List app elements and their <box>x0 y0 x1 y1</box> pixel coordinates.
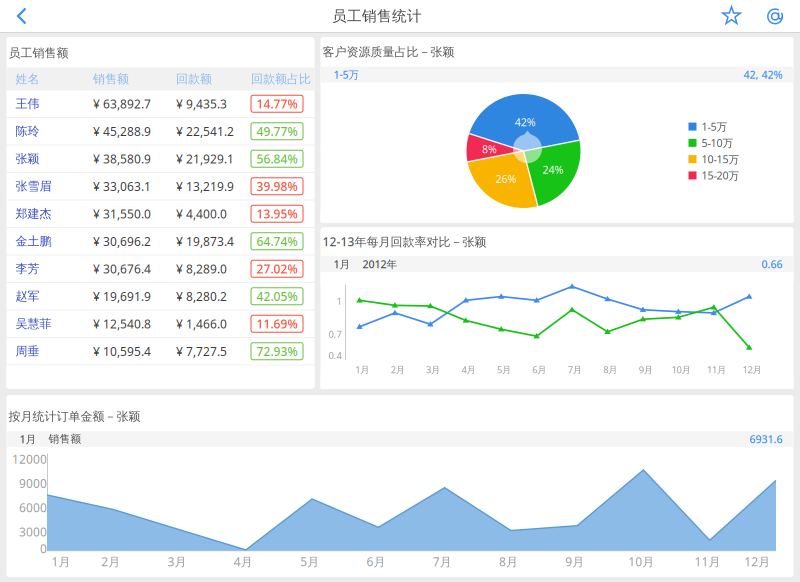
staticText: 0.4 <box>328 349 341 362</box>
staticText: 6月 <box>532 363 546 376</box>
staticText: 1-5万 <box>701 119 727 134</box>
staticText: 0 <box>40 540 47 556</box>
staticText: ¥ 38,580.9 <box>93 151 151 167</box>
staticText: 8月 <box>603 363 617 376</box>
staticText: 王伟 <box>15 96 39 111</box>
staticText: 42% <box>515 115 536 129</box>
staticText: 4月 <box>234 553 253 569</box>
staticText: 15-20万 <box>701 168 739 183</box>
staticText: 5月 <box>300 553 319 569</box>
button[interactable]: 张颖 <box>6 145 314 173</box>
button[interactable]: Favorite <box>710 0 754 32</box>
staticText: ¥ 31,550.0 <box>93 206 151 222</box>
staticText: 赵军 <box>15 289 39 304</box>
staticText: 2月 <box>391 363 405 376</box>
staticText: ¥ 10,595.4 <box>93 343 151 359</box>
staticText: 6月 <box>366 553 385 569</box>
staticText: 3000 <box>19 524 47 540</box>
staticText: 2012年 <box>362 257 397 271</box>
staticText: ¥ 12,540.8 <box>93 316 151 332</box>
staticText: ¥ 63,892.7 <box>93 96 151 112</box>
staticText: 5月 <box>497 363 511 376</box>
button[interactable]: 郑建杰 <box>6 200 314 228</box>
staticText: 2月 <box>101 553 120 569</box>
staticText: 吴慧菲 <box>15 316 51 331</box>
staticText: 1月 <box>355 363 369 376</box>
staticText: 42.05% <box>256 288 297 304</box>
button[interactable]: 王伟 <box>6 90 314 118</box>
staticText: 7月 <box>433 553 452 569</box>
staticText: 42, 42% <box>743 67 782 82</box>
staticText: 8% <box>482 142 497 156</box>
staticText: 56.84% <box>256 151 297 167</box>
button[interactable]: 李芳 <box>6 255 314 283</box>
staticText: 郑建杰 <box>15 206 51 221</box>
staticText: ¥ 30,696.2 <box>93 233 151 249</box>
staticText: 27.02% <box>256 261 297 277</box>
button[interactable]: Mentions <box>754 0 797 32</box>
staticText: 10-15万 <box>701 152 739 166</box>
staticText: ¥ 9,435.3 <box>176 96 227 112</box>
staticText: 49.77% <box>256 123 297 139</box>
staticText: 9月 <box>565 553 584 569</box>
staticText: 4月 <box>461 363 475 376</box>
staticText: 1-5万 <box>333 67 359 82</box>
staticText: 24% <box>543 163 564 177</box>
staticText: 12000 <box>12 451 47 467</box>
staticText: 9月 <box>639 363 653 376</box>
button[interactable]: 吴慧菲 <box>6 310 314 338</box>
staticText: 回款额占比 <box>251 72 311 86</box>
staticText: 姓名 <box>15 72 39 86</box>
staticText: 0.66 <box>761 257 782 271</box>
button[interactable]: 周垂 <box>6 338 314 365</box>
staticText: 11.69% <box>256 316 297 332</box>
staticText: 14.77% <box>256 96 297 112</box>
staticText: 9000 <box>19 475 47 491</box>
staticText: ¥ 4,400.0 <box>176 206 227 222</box>
staticText: 张雪眉 <box>15 179 51 194</box>
staticText: 64.74% <box>256 233 297 249</box>
staticText: 12-13年每月回款率对比－张颖 <box>322 233 486 249</box>
button[interactable]: 张雪眉 <box>6 173 314 200</box>
staticText: ¥ 8,289.0 <box>176 261 227 277</box>
staticText: 72.93% <box>256 343 297 359</box>
staticText: ¥ 33,063.1 <box>93 178 151 194</box>
staticText: 10月 <box>628 553 654 569</box>
staticText: ¥ 19,873.4 <box>176 233 234 249</box>
staticText: 周垂 <box>15 344 39 359</box>
staticText: ¥ 19,691.9 <box>93 288 151 304</box>
staticText: 客户资源质量占比－张颖 <box>322 45 454 59</box>
staticText: 李芳 <box>15 261 39 276</box>
staticText: 1月 <box>51 553 70 569</box>
staticText: 1月 <box>19 432 36 446</box>
staticText: 按月统计订单金额－张颖 <box>8 409 140 424</box>
staticText: 陈玲 <box>15 124 39 139</box>
button[interactable]: 赵军 <box>6 283 314 310</box>
staticText: 销售额 <box>48 432 81 445</box>
staticText: ¥ 7,727.5 <box>176 343 227 359</box>
button[interactable]: Back <box>0 0 44 32</box>
staticText: 3月 <box>426 363 440 376</box>
staticText: ¥ 1,466.0 <box>176 316 227 332</box>
button[interactable]: 陈玲 <box>6 118 314 145</box>
staticText: 员工销售额 <box>8 46 68 60</box>
staticText: 1月 <box>333 257 350 271</box>
staticText: 11月 <box>707 363 726 376</box>
staticText: 1 <box>336 295 341 307</box>
staticText: 0.7 <box>328 328 341 340</box>
staticText: 张颖 <box>15 151 39 166</box>
staticText: 10月 <box>672 363 691 376</box>
staticText: ¥ 30,676.4 <box>93 261 151 277</box>
staticText: 3月 <box>167 553 186 569</box>
staticText: 7月 <box>568 363 582 376</box>
button[interactable]: 金土鹏 <box>6 228 314 255</box>
staticText: 13.95% <box>256 206 297 222</box>
staticText: 回款额 <box>176 72 212 86</box>
staticText: 销售额 <box>93 72 129 86</box>
staticText: ¥ 13,219.9 <box>176 178 234 194</box>
staticText: 6000 <box>19 500 47 516</box>
staticText: 12月 <box>742 363 761 376</box>
staticText: ¥ 22,541.2 <box>176 123 234 139</box>
staticText: 金土鹏 <box>15 234 51 249</box>
staticText: ¥ 21,929.1 <box>176 151 234 167</box>
